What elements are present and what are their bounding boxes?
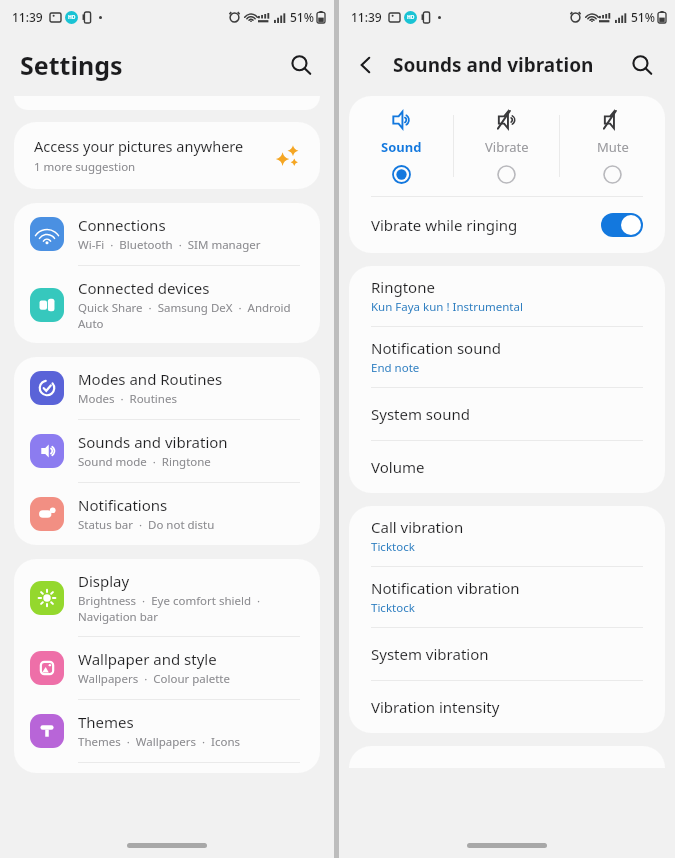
button[interactable]: Vibrate xyxy=(454,96,559,196)
staticText: 1 more suggestion xyxy=(34,159,136,175)
button[interactable]: Connections xyxy=(14,203,320,265)
staticText: Display xyxy=(78,571,130,591)
staticText: Mute xyxy=(597,138,629,156)
staticText: System vibration xyxy=(371,644,489,664)
staticText: Wi-Fi · Bluetooth · SIM manager xyxy=(78,237,261,253)
staticText: Connections xyxy=(78,215,166,235)
staticText: Themes · Wallpapers · Icons xyxy=(78,734,240,750)
button[interactable]: Mute xyxy=(560,96,665,196)
staticText: Ringtone xyxy=(371,277,435,297)
staticText: System sound xyxy=(371,404,470,424)
button[interactable]: Access your pictures anywhere xyxy=(14,122,320,189)
staticText: Sounds and vibration xyxy=(78,432,228,452)
button[interactable]: Back xyxy=(347,46,385,84)
staticText: Connected devices xyxy=(78,278,210,298)
button[interactable]: Notifications xyxy=(14,483,320,545)
button[interactable]: Volume xyxy=(349,441,665,493)
staticText: HD xyxy=(407,14,415,21)
button[interactable]: Call vibration xyxy=(349,506,665,566)
button[interactable]: Search xyxy=(282,46,320,84)
button[interactable]: Themes xyxy=(14,700,320,762)
button[interactable]: Vibrate while ringing xyxy=(349,197,665,253)
staticText: Ticktock xyxy=(371,600,415,616)
staticText: Vibration intensity xyxy=(371,697,500,717)
button[interactable]: Vibration intensity xyxy=(349,681,665,733)
staticText: Sounds and vibration xyxy=(393,52,594,78)
staticText: 11:39 xyxy=(12,9,43,25)
staticText: Brightness · Eye comfort shield · Naviga… xyxy=(78,593,261,624)
staticText: Notification sound xyxy=(371,338,501,358)
button[interactable]: Connected devices xyxy=(14,266,320,343)
staticText: Call vibration xyxy=(371,517,464,537)
staticText: Notification vibration xyxy=(371,578,520,598)
button[interactable]: Sound xyxy=(349,96,453,196)
button[interactable]: Sounds and vibration xyxy=(14,420,320,482)
button[interactable]: Wallpaper and style xyxy=(14,637,320,699)
staticText: Kun Faya kun ! Instrumental xyxy=(371,299,523,315)
staticText: Ticktock xyxy=(371,539,415,555)
button[interactable]: Notification vibration xyxy=(349,567,665,627)
button[interactable]: System vibration xyxy=(349,628,665,680)
staticText: Access your pictures anywhere xyxy=(34,136,244,156)
staticText: Settings xyxy=(20,48,123,82)
staticText: Modes and Routines xyxy=(78,369,223,389)
staticText: 51% xyxy=(631,9,655,25)
staticText: 51% xyxy=(290,9,314,25)
staticText: 11:39 xyxy=(351,9,382,25)
button[interactable]: Display xyxy=(14,559,320,636)
staticText: Notifications xyxy=(78,495,168,515)
staticText: Volume xyxy=(371,457,425,477)
staticText: Wallpaper and style xyxy=(78,649,217,669)
staticText: Themes xyxy=(78,712,134,732)
staticText: Modes · Routines xyxy=(78,391,177,407)
button[interactable]: System sound xyxy=(349,388,665,440)
button[interactable]: Search xyxy=(623,46,661,84)
button[interactable]: Ringtone xyxy=(349,266,665,326)
staticText: Sound mode · Ringtone xyxy=(78,454,211,470)
button[interactable]: Notification sound xyxy=(349,327,665,387)
staticText: Vibrate while ringing xyxy=(371,215,518,235)
staticText: Wallpapers · Colour palette xyxy=(78,671,230,687)
button[interactable]: Modes and Routines xyxy=(14,357,320,419)
staticText: HD xyxy=(68,14,76,21)
staticText: Sound xyxy=(381,138,422,156)
staticText: End note xyxy=(371,360,420,376)
staticText: Status bar · Do not distu xyxy=(78,517,215,533)
staticText: Vibrate xyxy=(485,138,529,156)
staticText: Quick Share · Samsung DeX · Android Auto xyxy=(78,300,291,331)
